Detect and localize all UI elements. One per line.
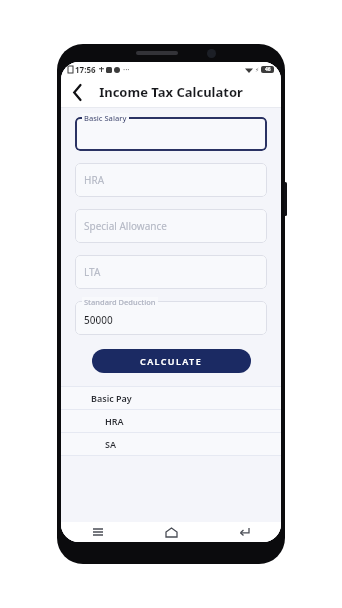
staticText: LTA	[84, 265, 101, 279]
button[interactable]: LTA	[75, 255, 267, 289]
staticText: 17:56	[75, 64, 96, 75]
staticText: Basic Salary	[84, 113, 127, 123]
staticText: 50000	[84, 313, 113, 327]
staticText: 46	[265, 66, 271, 73]
staticText: Standard Deduction	[84, 297, 156, 307]
button[interactable]: Basic Pay	[61, 387, 281, 409]
button[interactable]: Basic Salary	[75, 117, 267, 151]
button[interactable]: SA	[61, 433, 281, 455]
staticText: SA	[105, 438, 116, 450]
staticText: HRA	[105, 415, 124, 427]
button[interactable]: Recents	[87, 522, 109, 542]
button[interactable]: HRA	[75, 163, 267, 197]
button[interactable]: Home	[160, 522, 182, 542]
button[interactable]: CALCULATE	[92, 349, 251, 373]
staticText: Basic Pay	[91, 392, 132, 404]
button[interactable]: HRA	[61, 410, 281, 432]
staticText: Special Allowance	[84, 219, 167, 233]
button[interactable]: Back	[65, 79, 91, 105]
staticText: Income Tax Calculator	[99, 83, 243, 101]
staticText: ···	[123, 64, 130, 75]
button[interactable]: 50000	[75, 301, 267, 335]
button[interactable]: Back	[233, 522, 255, 542]
staticText: ⚡	[255, 66, 260, 73]
button[interactable]: Special Allowance	[75, 209, 267, 243]
staticText: CALCULATE	[140, 355, 203, 367]
staticText: HRA	[84, 173, 105, 187]
